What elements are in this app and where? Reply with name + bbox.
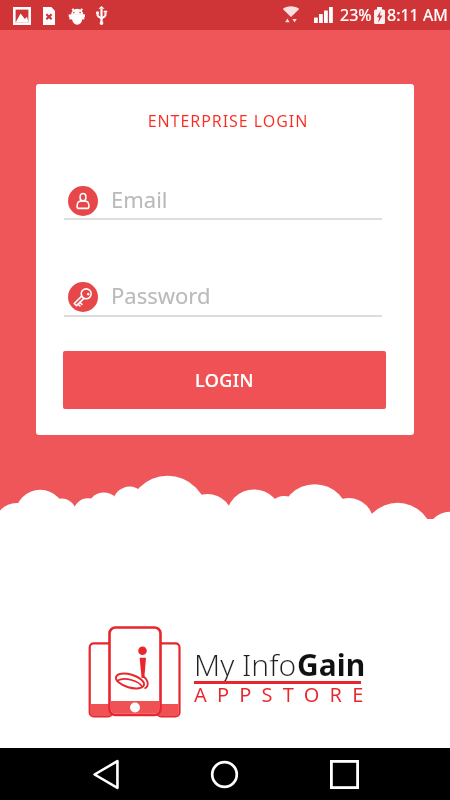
staticText: LOGIN (195, 368, 254, 393)
staticText: Email (111, 184, 168, 214)
staticText: 23% (340, 4, 372, 26)
button[interactable]: Back (78, 748, 134, 800)
button[interactable]: LOGIN (63, 351, 386, 409)
staticText: Gain (297, 644, 366, 685)
staticText: APPSTORE (194, 681, 374, 708)
staticText: My Info (194, 644, 297, 685)
staticText: ENTERPRISE LOGIN (39, 110, 414, 132)
button[interactable]: Recent apps (316, 748, 372, 800)
staticText: 8:11 AM (387, 4, 448, 26)
staticText: Password (111, 280, 211, 310)
button[interactable]: Home (196, 748, 253, 800)
